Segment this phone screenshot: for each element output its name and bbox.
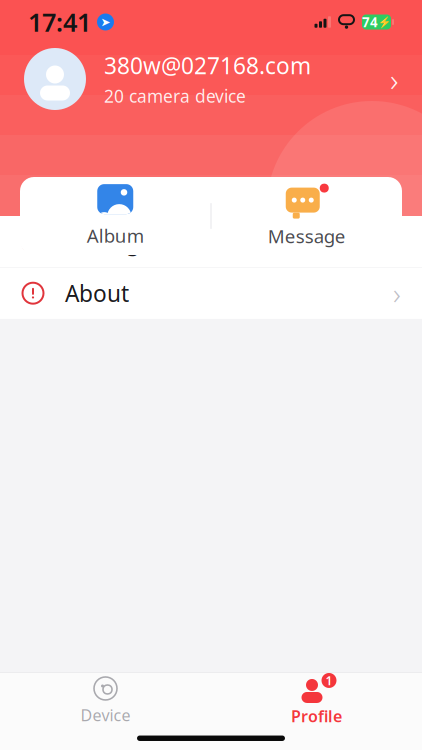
- button[interactable]: Device: [0, 669, 211, 726]
- staticText: ›: [390, 58, 398, 100]
- staticText: Profile: [291, 705, 342, 727]
- staticText: 74: [362, 13, 378, 31]
- staticText: ›: [393, 274, 401, 313]
- button[interactable]: About: [0, 268, 422, 319]
- button[interactable]: Settings: [0, 216, 422, 267]
- staticText: 380w@027168.com: [104, 50, 311, 80]
- button[interactable]: 380w@027168.com: [0, 0, 422, 216]
- staticText: Message: [268, 224, 346, 248]
- staticText: Settings: [65, 226, 151, 256]
- button[interactable]: Album: [20, 168, 210, 264]
- button[interactable]: 1: [211, 668, 422, 727]
- staticText: About: [65, 278, 129, 308]
- staticText: 17:41: [28, 5, 91, 39]
- staticText: 1: [325, 672, 332, 688]
- staticText: Device: [80, 704, 130, 726]
- button[interactable]: Message: [211, 171, 402, 261]
- staticText: Album: [87, 223, 144, 248]
- staticText: ➤: [100, 15, 110, 29]
- staticText: ⚡: [378, 16, 391, 28]
- staticText: 20 camera device: [104, 84, 246, 107]
